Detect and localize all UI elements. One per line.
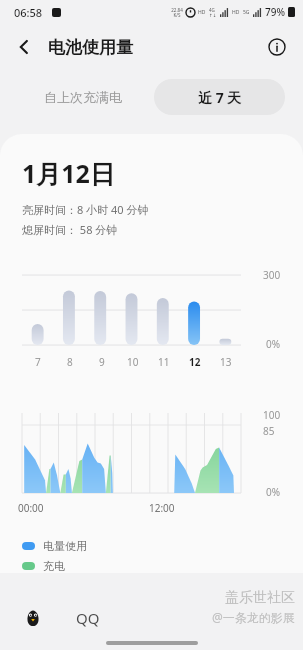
staticText: 22.84 K/S [171,7,183,18]
staticText: 1月12日 [22,156,115,190]
staticText: 7 [35,355,41,369]
staticText: 自上次充满电 [44,89,122,105]
staticText: 13 [220,355,232,369]
staticText: 00:00 [18,501,44,515]
staticText: @一条龙的影展 [212,609,295,625]
staticText: 8 [67,355,73,369]
staticText: 79% [265,5,285,19]
button[interactable]: 自上次充满电 [18,79,148,115]
staticText: 12:00 [149,501,175,515]
button[interactable]: QQ [24,608,100,628]
staticText: QQ [76,608,100,628]
staticText: 9 [99,355,105,369]
staticText: 12 [189,355,201,369]
button[interactable]: Back [6,29,42,65]
staticText: 近 7 天 [198,88,242,107]
staticText: 电量使用 [43,539,87,553]
staticText: 11 [158,355,170,369]
staticText: 10 [127,355,139,369]
staticText: HD [232,9,240,16]
staticText: 0% [266,337,281,351]
button[interactable]: Information [259,29,295,65]
other: QQ [24,609,42,627]
staticText: 5G [243,9,250,16]
staticText: 熄屏时间： 58 分钟 [22,222,118,237]
button[interactable]: 近 7 天 [154,79,285,115]
staticText: 300 [263,268,281,282]
staticText: 充电 [43,559,65,573]
staticText: 电池使用量 [48,37,133,58]
staticText: 4G ↑↓ [209,7,217,18]
staticText: HD [198,9,206,16]
staticText: 85 [263,424,275,438]
staticText: 盖乐世社区 [225,589,295,607]
staticText: 亮屏时间：8 小时 40 分钟 [22,202,149,217]
staticText: 0% [266,485,281,499]
staticText: 06:58 [14,5,43,20]
staticText: 100 [263,408,281,422]
